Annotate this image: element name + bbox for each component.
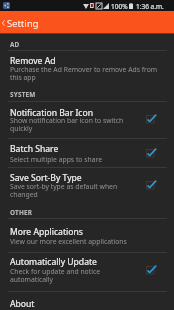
button[interactable]: About (0, 292, 174, 310)
staticText: Remove Ad (10, 55, 56, 67)
staticText: Notification Bar Icon (10, 107, 93, 119)
button[interactable]: Navigate up (0, 11, 7, 33)
staticText: Purchase the Ad Remover to remove Ads fr… (10, 65, 164, 82)
button[interactable]: More Applications (0, 219, 174, 252)
button[interactable]: Save Sort-By Type (0, 168, 174, 210)
staticText: 100% (111, 2, 128, 11)
staticText: OTHER (10, 208, 33, 217)
staticText: About (10, 298, 35, 310)
staticText: AD (10, 40, 20, 49)
staticText: Save Sort-By Type (10, 172, 82, 184)
staticText: Select multiple apps to share (10, 155, 134, 164)
staticText: Batch Share (10, 143, 59, 155)
staticText: SYSTEM (10, 90, 36, 99)
staticText: Save sort-by type as default when change… (10, 182, 134, 199)
button[interactable]: Remove Ad (0, 51, 174, 87)
staticText: Check for update and notice automaticall… (10, 267, 134, 284)
staticText: 1:36 a.m. (136, 2, 164, 11)
button[interactable]: Automatically Update (0, 253, 174, 291)
staticText: Show notification bar icon to switch qui… (10, 116, 134, 133)
staticText: Setting (7, 17, 39, 30)
button[interactable]: Notification Bar Icon (0, 102, 174, 138)
staticText: View our more excellent applications (10, 237, 164, 246)
staticText: Automatically Update (10, 256, 97, 268)
button[interactable]: Batch Share (0, 139, 174, 167)
staticText: More Applications (10, 226, 83, 238)
